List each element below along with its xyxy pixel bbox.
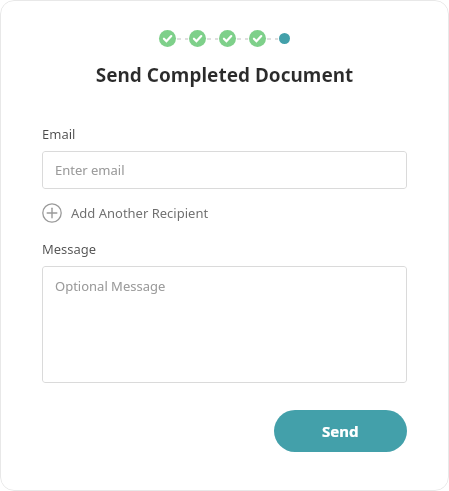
staticText: Optional Message <box>55 277 166 295</box>
staticText: Email <box>42 125 76 143</box>
staticText: Message <box>42 240 97 258</box>
staticText: Send <box>322 421 359 441</box>
button[interactable]: Add another recipient <box>42 201 209 225</box>
button[interactable]: Enter email <box>42 151 407 189</box>
button[interactable]: Send <box>274 410 407 452</box>
button[interactable]: Optional Message <box>42 266 407 383</box>
staticText: Add Another Recipient <box>71 204 209 222</box>
staticText: Send Completed Document <box>0 62 449 88</box>
staticText: Enter email <box>55 161 125 179</box>
other: Add another recipient <box>42 203 62 223</box>
